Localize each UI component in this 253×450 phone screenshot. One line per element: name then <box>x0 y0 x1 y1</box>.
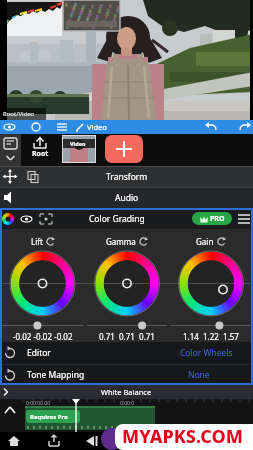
button[interactable]: White Balance <box>0 385 253 399</box>
staticText: Color Grading <box>89 213 145 225</box>
button[interactable] <box>47 120 72 134</box>
staticText: Video <box>70 140 86 147</box>
button[interactable] <box>0 134 21 166</box>
staticText: Gain <box>196 236 214 247</box>
button[interactable] <box>197 120 225 134</box>
button[interactable]: 0:00:00.00 <box>0 399 253 432</box>
staticText: Gamma <box>106 236 136 247</box>
staticText: Lift <box>31 236 43 247</box>
button[interactable]: Transform <box>0 166 253 187</box>
staticText: White Balance <box>101 387 152 397</box>
staticText: 1.14 1.22 1.57 <box>183 331 239 342</box>
button[interactable] <box>105 135 143 163</box>
button[interactable]: Audio <box>0 187 253 208</box>
button[interactable] <box>225 120 253 134</box>
button[interactable] <box>72 120 112 134</box>
staticText: Audio <box>115 192 139 204</box>
staticText: Transform <box>106 171 148 183</box>
button[interactable]: Root <box>21 134 59 166</box>
staticText: Video <box>87 122 107 132</box>
button[interactable] <box>0 432 30 450</box>
button[interactable]: Video <box>62 135 96 163</box>
staticText: 0:00:00.00 <box>26 400 51 407</box>
staticText: Tone Mapping <box>27 369 85 381</box>
button[interactable]: Color Grading <box>0 208 253 229</box>
staticText: Requires Pro <box>30 413 68 421</box>
staticText: PRO <box>210 214 225 224</box>
button[interactable] <box>22 120 47 134</box>
staticText: Editor <box>27 347 51 359</box>
button[interactable]: Editor <box>0 342 253 364</box>
staticText: Root <box>32 149 49 159</box>
staticText: Color Wheels <box>180 347 233 359</box>
staticText: 0.71 0.71 0.71 <box>99 331 155 342</box>
staticText: -0.02 -0.02 -0.02 <box>13 331 73 342</box>
button[interactable] <box>30 432 65 450</box>
button[interactable]: PRO <box>192 212 232 225</box>
staticText: MYAPKS.COM <box>122 424 243 449</box>
button[interactable] <box>0 120 22 134</box>
button[interactable]: Tone Mapping <box>0 365 253 385</box>
button[interactable] <box>65 432 100 450</box>
staticText: None <box>188 369 210 381</box>
staticText: 0:00:0 <box>120 400 135 407</box>
staticText: Root/Video <box>3 110 35 118</box>
